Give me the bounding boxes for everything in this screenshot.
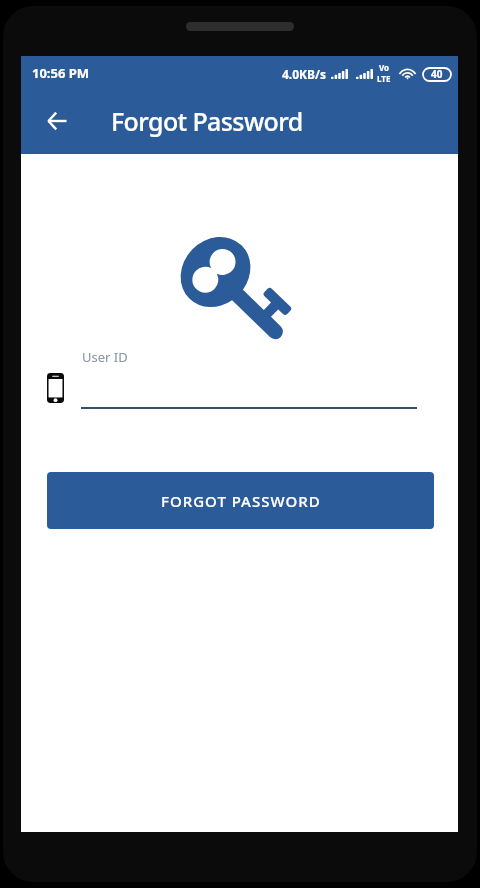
button[interactable]: FORGOT PASSWORD: [47, 472, 434, 529]
staticText: 10:56 PM: [32, 64, 90, 82]
staticText: 40: [431, 67, 443, 81]
staticText: User ID: [82, 348, 128, 366]
staticText: FORGOT PASSWORD: [161, 491, 321, 511]
staticText: LTE: [377, 73, 391, 84]
staticText: Vo: [379, 62, 390, 73]
button[interactable]: Back: [34, 98, 80, 144]
staticText: 4.0KB/s: [282, 66, 327, 82]
staticText: Forgot Password: [111, 104, 303, 138]
